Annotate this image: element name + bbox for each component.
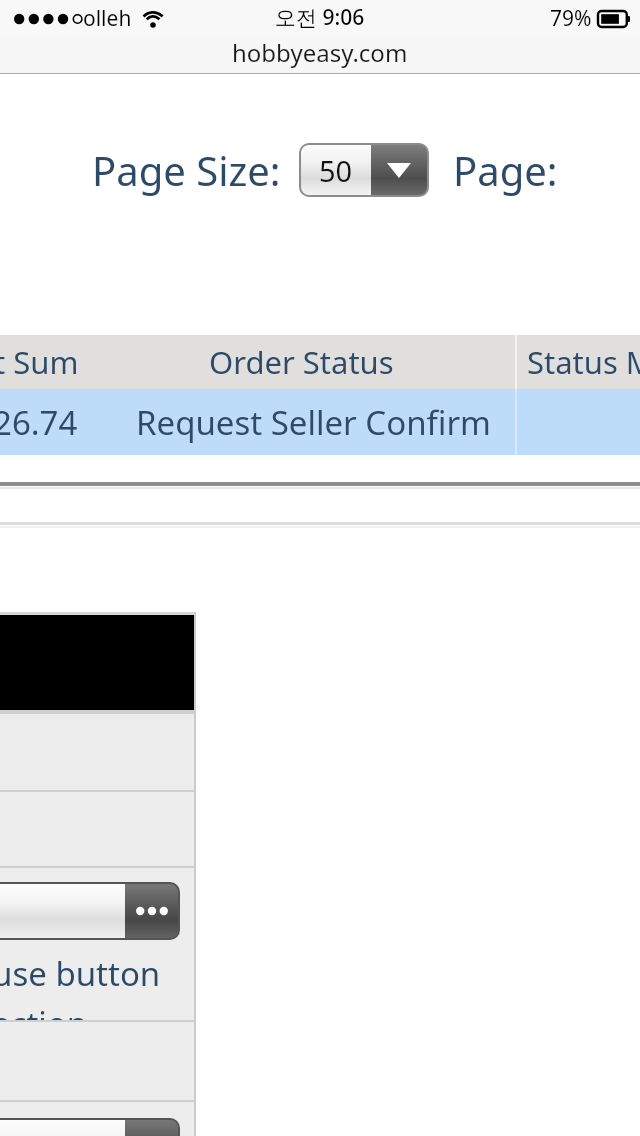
staticText: Page:	[453, 143, 558, 197]
staticText: t Sum	[0, 341, 79, 383]
staticText: 26.74	[0, 400, 78, 445]
button[interactable]: Page size selector	[301, 145, 427, 195]
button[interactable]	[0, 714, 196, 790]
button[interactable]: 26.74	[0, 389, 640, 455]
staticText: 50	[319, 151, 353, 190]
staticText: use button	[0, 951, 161, 996]
staticText: 오전 9:06	[275, 3, 365, 32]
button[interactable]: More options	[125, 1120, 178, 1136]
staticText: Status M	[527, 341, 640, 383]
staticText: Order Status	[209, 341, 394, 383]
staticText: olleh	[83, 4, 132, 33]
button[interactable]	[0, 792, 196, 866]
staticText: Request Seller Confirm	[136, 400, 491, 445]
staticText: 79%	[550, 4, 592, 33]
button[interactable]: More options	[125, 884, 178, 938]
button[interactable]	[0, 1022, 196, 1100]
button[interactable]: hobbyeasy.com	[232, 36, 408, 69]
staticText: Page Size:	[92, 143, 281, 197]
staticText: ection	[0, 1001, 88, 1020]
